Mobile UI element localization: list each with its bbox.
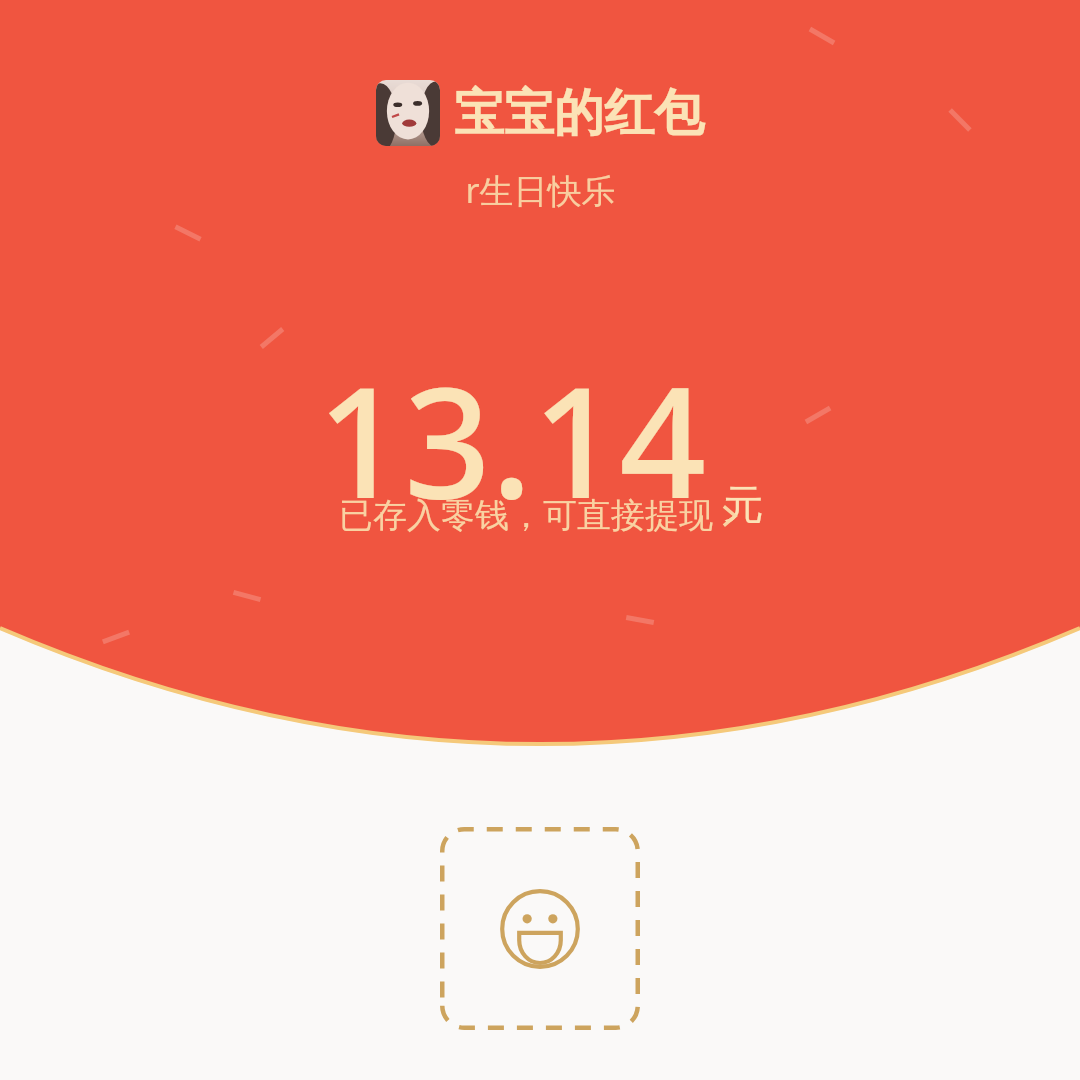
staticText: 已存入零钱，可直接提现 — [339, 494, 713, 537]
staticText: 13.14 — [317, 336, 707, 543]
staticText: 元 — [723, 479, 763, 529]
button[interactable]: 已存入零钱，可直接提现 — [339, 494, 741, 537]
button[interactable]: Add sticker — [440, 827, 640, 1030]
staticText: 宝宝的红包 — [454, 82, 704, 145]
button[interactable]: 宝宝的红包 — [376, 80, 704, 146]
staticText: r生日快乐 — [465, 167, 616, 213]
